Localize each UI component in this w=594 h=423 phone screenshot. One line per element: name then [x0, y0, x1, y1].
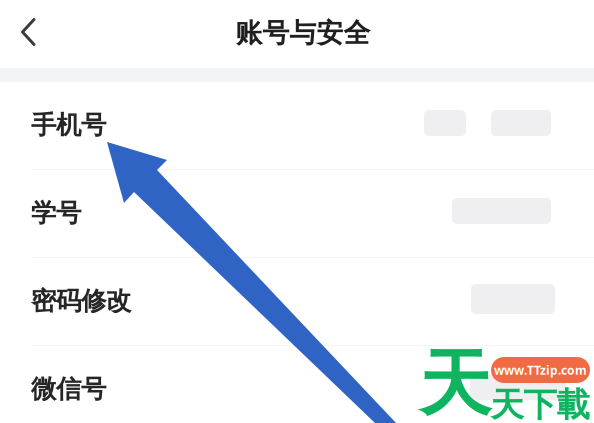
- button[interactable]: 密码修改: [0, 258, 594, 346]
- staticText: 微信号: [31, 373, 106, 404]
- staticText: www.TTzip.com: [494, 362, 587, 378]
- staticText: 天下載: [490, 384, 589, 423]
- button[interactable]: 手机号: [0, 82, 594, 170]
- button[interactable]: 学号: [0, 170, 594, 258]
- staticText: 账号与安全: [235, 17, 370, 49]
- staticText: 手机号: [31, 109, 106, 140]
- staticText: 天: [419, 340, 491, 423]
- staticText: 学号: [31, 197, 81, 228]
- staticText: 密码修改: [31, 285, 131, 316]
- button[interactable]: Back: [0, 0, 70, 68]
- button[interactable]: 微信号: [0, 346, 594, 423]
